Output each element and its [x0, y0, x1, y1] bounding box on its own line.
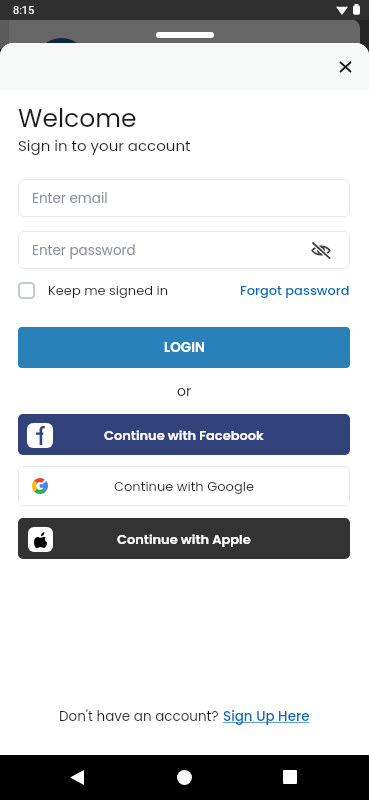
staticText: Continue with Facebook: [104, 426, 264, 444]
staticText: Keep me signed in: [48, 281, 169, 299]
button[interactable]: Recent apps: [270, 757, 310, 797]
button[interactable]: Back: [57, 757, 97, 797]
button[interactable]: Sign Up Here: [223, 707, 310, 726]
button[interactable]: LOGIN: [18, 327, 350, 368]
button[interactable]: Home: [164, 757, 204, 797]
staticText: 8:15: [13, 4, 35, 17]
button[interactable]: Enter email: [18, 179, 350, 217]
button[interactable]: Show password: [306, 235, 336, 265]
button[interactable]: Continue with Google: [18, 466, 350, 506]
staticText: Continue with Apple: [117, 530, 251, 548]
staticText: Don't have an account?: [59, 707, 223, 726]
staticText: or: [177, 381, 192, 401]
button[interactable]: Close: [328, 50, 362, 84]
staticText: LOGIN: [164, 338, 205, 357]
staticText: Sign in to your account: [18, 135, 191, 156]
button[interactable]: Forgot password: [240, 281, 350, 299]
staticText: Enter password: [32, 241, 136, 260]
button[interactable]: Continue with Facebook: [18, 414, 350, 455]
staticText: Enter email: [32, 189, 108, 208]
button[interactable]: Continue with Apple: [18, 518, 350, 559]
button[interactable]: Enter password: [18, 231, 350, 269]
button[interactable]: Keep me signed in: [18, 281, 169, 299]
staticText: Continue with Google: [114, 477, 254, 495]
staticText: Welcome: [18, 101, 137, 136]
